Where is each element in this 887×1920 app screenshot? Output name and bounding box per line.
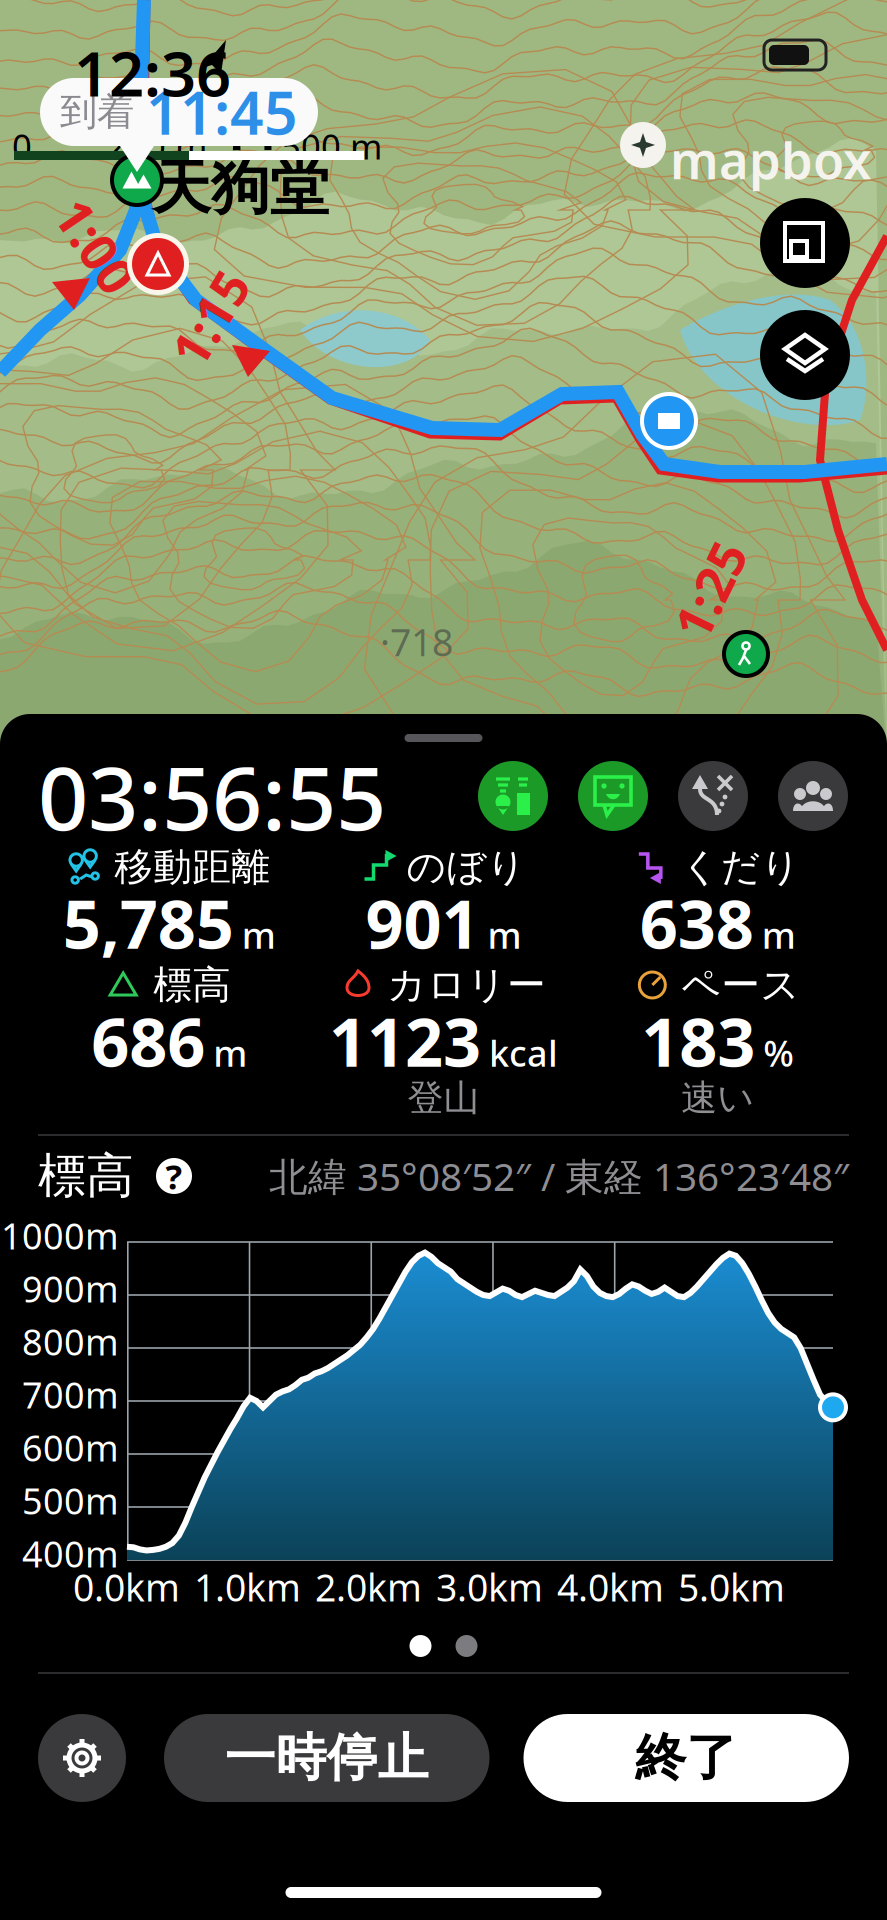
staticText: 500 m: [281, 123, 382, 169]
staticText: 速い: [681, 1076, 754, 1120]
staticText: 500m: [22, 1477, 119, 1524]
staticText: kcal: [489, 1029, 558, 1077]
staticText: 岩: [216, 82, 280, 161]
button[interactable]: Post activity note: [578, 761, 648, 831]
button[interactable]: Fit route to screen: [760, 198, 850, 288]
staticText: 3.0km: [436, 1562, 543, 1612]
staticText: 1:25: [659, 556, 760, 624]
button[interactable]: Map layers: [760, 310, 850, 400]
staticText: 638: [640, 879, 754, 967]
button[interactable]: Settings: [38, 1714, 126, 1802]
staticText: 到着: [60, 89, 134, 135]
staticText: m: [487, 911, 521, 959]
staticText: 5,785: [63, 879, 234, 967]
staticText: 12:36: [74, 32, 231, 113]
button[interactable]: Off-route alert: [678, 761, 748, 831]
staticText: のぼり: [406, 843, 526, 891]
staticText: 終了: [635, 1727, 737, 1789]
staticText: 1.0km: [194, 1562, 301, 1612]
staticText: 移動距離: [114, 843, 270, 891]
staticText: 5.0km: [678, 1562, 785, 1612]
staticText: ?: [165, 1153, 182, 1199]
staticText: くだり: [681, 843, 801, 891]
staticText: mapbox: [670, 126, 871, 193]
staticText: 0: [12, 123, 32, 169]
staticText: 03:56:55: [38, 738, 386, 854]
staticText: 400m: [22, 1530, 119, 1577]
button[interactable]: 一時停止: [164, 1714, 489, 1802]
staticText: 901: [365, 879, 479, 967]
staticText: 250 m: [106, 123, 207, 169]
staticText: 一時停止: [225, 1727, 429, 1789]
staticText: 1:00: [45, 212, 146, 280]
staticText: m: [762, 911, 796, 959]
staticText: カロリー: [387, 961, 546, 1009]
staticText: 1:15: [159, 284, 260, 352]
staticText: 900m: [22, 1265, 119, 1312]
staticText: 2.0km: [315, 1562, 422, 1612]
button[interactable]: 終了: [523, 1714, 849, 1802]
staticText: 標高: [38, 1146, 134, 1205]
staticText: 686: [91, 997, 205, 1085]
staticText: ペース: [681, 961, 800, 1009]
staticText: 0.0km: [73, 1562, 180, 1612]
staticText: 北緯 35°08′52″ / 東経 136°23′48″: [269, 1150, 849, 1202]
button[interactable]: Group members: [778, 761, 848, 831]
button[interactable]: About elevation: [134, 1154, 192, 1198]
staticText: m: [213, 1029, 247, 1077]
staticText: 600m: [22, 1424, 119, 1471]
staticText: 天狗堂: [152, 152, 329, 224]
button[interactable]: Nearby water and facilities: [478, 761, 548, 831]
staticText: 登山: [407, 1076, 479, 1120]
staticText: 800m: [22, 1318, 119, 1365]
staticText: %: [763, 1029, 794, 1077]
staticText: 183: [641, 997, 755, 1085]
staticText: 700m: [22, 1371, 119, 1418]
staticText: ·718: [380, 617, 453, 667]
staticText: 1000m: [1, 1212, 119, 1259]
staticText: 11:45: [146, 73, 298, 151]
staticText: 標高: [153, 961, 231, 1009]
staticText: 4.0km: [557, 1562, 664, 1612]
staticText: m: [242, 911, 276, 959]
staticText: 1123: [329, 997, 481, 1085]
